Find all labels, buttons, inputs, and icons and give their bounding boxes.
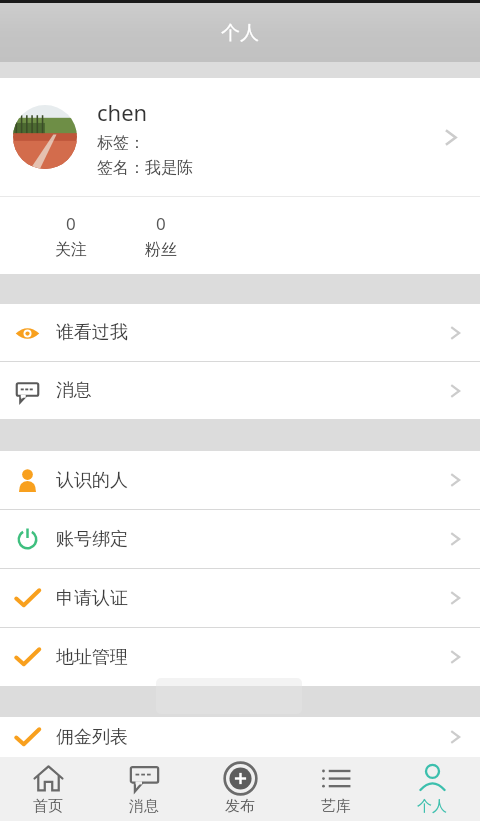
- staticText: 佣金列表: [56, 726, 128, 749]
- staticText: 艺库: [321, 797, 351, 816]
- button[interactable]: 消息: [96, 757, 192, 821]
- button[interactable]: 个人: [384, 757, 480, 821]
- staticText: 消息: [56, 379, 92, 402]
- button[interactable]: 消息: [0, 362, 480, 419]
- staticText: 签名：我是陈: [97, 158, 193, 178]
- staticText: 账号绑定: [56, 528, 128, 551]
- button[interactable]: 艺库: [288, 757, 384, 821]
- staticText: 个人: [417, 797, 447, 816]
- button[interactable]: 账号绑定: [0, 510, 480, 568]
- staticText: 标签：: [97, 133, 145, 153]
- staticText: 0: [66, 212, 76, 235]
- button[interactable]: 首页: [0, 757, 96, 821]
- button[interactable]: 认识的人: [0, 451, 480, 509]
- button[interactable]: 发布: [192, 757, 288, 821]
- other: 发布: [224, 762, 257, 795]
- staticText: 谁看过我: [56, 321, 128, 344]
- staticText: 首页: [33, 797, 63, 816]
- staticText: 消息: [129, 797, 159, 816]
- button[interactable]: 申请认证: [0, 569, 480, 627]
- staticText: 申请认证: [56, 587, 128, 610]
- staticText: 发布: [225, 797, 255, 816]
- button[interactable]: chen: [0, 78, 480, 196]
- button[interactable]: 0: [40, 197, 102, 274]
- button[interactable]: 谁看过我: [0, 304, 480, 361]
- staticText: 个人: [221, 21, 259, 45]
- staticText: 关注: [55, 240, 87, 260]
- staticText: 粉丝: [145, 240, 177, 260]
- button[interactable]: 0: [130, 197, 192, 274]
- staticText: 0: [156, 212, 166, 235]
- button[interactable]: 地址管理: [0, 628, 480, 686]
- button[interactable]: 佣金列表: [0, 717, 480, 757]
- staticText: chen: [97, 97, 148, 127]
- staticText: 地址管理: [56, 646, 128, 669]
- staticText: 认识的人: [56, 469, 128, 492]
